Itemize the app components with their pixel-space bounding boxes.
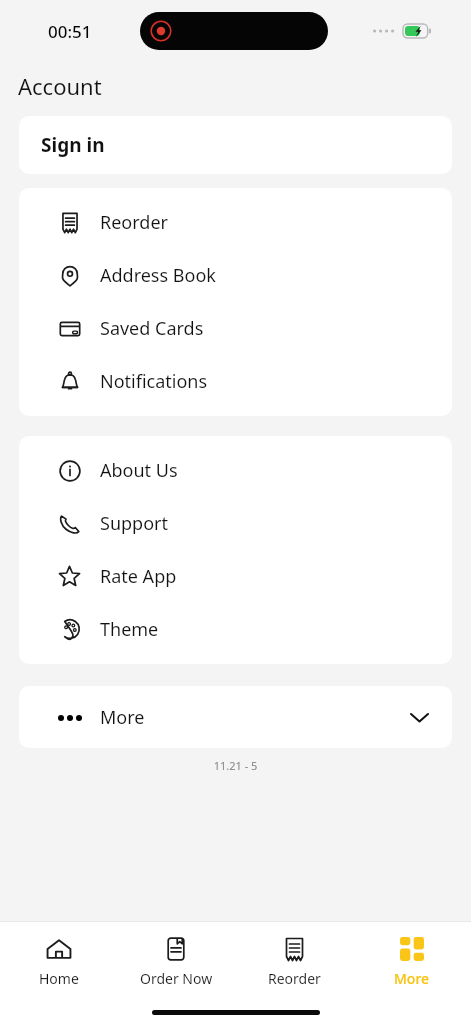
staticText: 11.21 - 5 (0, 758, 471, 773)
button[interactable]: Home (0, 922, 117, 1000)
staticText: Order Now (140, 969, 213, 988)
staticText: Reorder (100, 210, 168, 235)
staticText: Reorder (268, 969, 321, 988)
button[interactable]: Reorder (235, 922, 353, 1000)
button[interactable]: Reorder (19, 196, 452, 249)
button[interactable]: About Us (19, 444, 452, 497)
staticText: About Us (100, 458, 178, 483)
button[interactable]: Saved Cards (19, 302, 452, 355)
staticText: Account (18, 71, 102, 101)
button[interactable]: Theme (19, 603, 452, 656)
staticText: Saved Cards (100, 316, 204, 341)
staticText: Rate App (100, 564, 177, 589)
button[interactable]: Notifications (19, 355, 452, 408)
button[interactable]: Order Now (117, 922, 235, 1000)
staticText: Notifications (100, 369, 208, 394)
staticText: Sign in (41, 132, 105, 158)
button[interactable]: Support (19, 497, 452, 550)
staticText: Theme (100, 617, 159, 642)
button[interactable]: More (19, 686, 452, 748)
button[interactable]: Rate App (19, 550, 452, 603)
button[interactable]: Sign in (19, 116, 452, 174)
button[interactable]: Address Book (19, 249, 452, 302)
staticText: More (394, 969, 430, 988)
button[interactable]: More (353, 922, 471, 1000)
staticText: More (100, 705, 145, 730)
staticText: Support (100, 511, 168, 536)
staticText: 00:51 (48, 20, 92, 43)
staticText: Home (39, 969, 79, 988)
staticText: Address Book (100, 263, 216, 288)
